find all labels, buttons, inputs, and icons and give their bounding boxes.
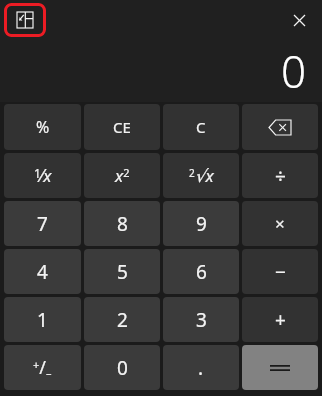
button[interactable]: × — [242, 201, 318, 246]
staticText: 4 — [37, 259, 48, 285]
button[interactable]: 1⁄x — [4, 153, 81, 198]
button[interactable]: Keep on top — [4, 3, 46, 37]
button[interactable]: Close — [276, 2, 322, 38]
staticText: x2 — [115, 164, 130, 187]
staticText: 5 — [117, 259, 128, 285]
button[interactable]: . — [163, 345, 239, 390]
button[interactable]: x2 — [84, 153, 160, 198]
staticText: % — [36, 116, 50, 138]
staticText: 1 — [37, 307, 48, 333]
button[interactable]: − — [242, 249, 318, 294]
staticText: 3 — [196, 307, 207, 333]
staticText: ÷ — [275, 163, 286, 189]
button[interactable]: ÷ — [242, 153, 318, 198]
staticText: CE — [113, 117, 131, 137]
staticText: + — [275, 307, 286, 333]
button[interactable]: 6 — [163, 249, 239, 294]
button[interactable]: Backspace — [242, 104, 318, 150]
button[interactable]: 0 — [84, 345, 160, 390]
button[interactable]: 7 — [4, 201, 81, 246]
button[interactable]: 2 — [84, 297, 160, 342]
button[interactable]: + — [242, 297, 318, 342]
staticText: +/– — [33, 355, 52, 380]
button[interactable]: Equals — [242, 345, 318, 390]
staticText: 1⁄x — [34, 163, 52, 188]
button[interactable]: 9 — [163, 201, 239, 246]
button[interactable]: 1 — [4, 297, 81, 342]
button[interactable]: 3 — [163, 297, 239, 342]
staticText: 0 — [117, 355, 128, 381]
staticText: 2√x — [189, 164, 214, 187]
staticText: C — [196, 117, 206, 137]
button[interactable]: 2√x — [163, 153, 239, 198]
button[interactable]: CE — [84, 104, 160, 150]
staticText: × — [275, 212, 285, 235]
button[interactable]: 5 — [84, 249, 160, 294]
staticText: 6 — [196, 259, 207, 285]
button[interactable]: 8 — [84, 201, 160, 246]
staticText: − — [275, 259, 286, 285]
staticText: . — [198, 355, 204, 381]
button[interactable]: % — [4, 104, 81, 150]
staticText: 7 — [37, 211, 48, 237]
staticText: 2 — [117, 307, 128, 333]
button[interactable]: +/– — [4, 345, 81, 390]
staticText: 9 — [196, 211, 207, 237]
button[interactable]: 4 — [4, 249, 81, 294]
staticText: 0 — [281, 41, 307, 101]
staticText: 8 — [117, 211, 128, 237]
button[interactable]: C — [163, 104, 239, 150]
